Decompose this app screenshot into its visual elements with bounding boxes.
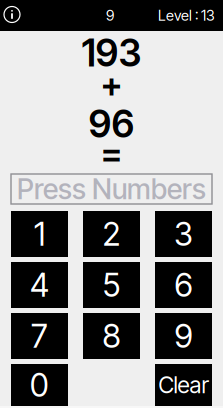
button[interactable]: 6 <box>155 262 212 308</box>
button[interactable]: 3 <box>155 211 212 257</box>
staticText: + <box>100 64 122 106</box>
staticText: 4 <box>30 266 49 304</box>
button[interactable]: Clear <box>155 364 212 406</box>
button[interactable]: 8 <box>83 313 140 359</box>
staticText: = <box>100 132 122 174</box>
staticText: Press Numbers <box>17 172 206 206</box>
staticText: 9 <box>174 317 192 355</box>
staticText: 0 <box>30 366 49 404</box>
staticText: 8 <box>102 317 120 355</box>
button[interactable]: 9 <box>155 313 212 359</box>
button[interactable]: 7 <box>11 313 68 359</box>
staticText: 5 <box>102 266 120 304</box>
staticText: 9 <box>106 7 114 24</box>
staticText: 96 <box>88 101 134 147</box>
staticText: 193 <box>81 30 141 76</box>
staticText: 1 <box>34 215 45 253</box>
staticText: Clear <box>158 371 208 399</box>
staticText: 2 <box>102 215 120 253</box>
button[interactable]: 5 <box>83 262 140 308</box>
button[interactable]: 2 <box>83 211 140 257</box>
staticText: 6 <box>174 266 192 304</box>
button[interactable]: Press Numbers <box>11 174 212 204</box>
button[interactable]: 1 <box>11 211 68 257</box>
staticText: 7 <box>31 317 48 355</box>
button[interactable]: 4 <box>11 262 68 308</box>
staticText: Level : 13 <box>158 7 215 24</box>
button[interactable]: 0 <box>11 364 68 406</box>
button[interactable]: Info <box>0 0 25 30</box>
staticText: 3 <box>174 215 193 253</box>
